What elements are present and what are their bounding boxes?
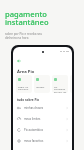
staticText: pagamento instantâneo [5,9,49,27]
button[interactable]: meus limites [13,113,72,124]
staticText: Pix parcelado em ate 12x [54,85,67,93]
button[interactable]: meus favoritos [13,135,72,146]
button[interactable]: Pix parcelado em ate 12x [52,75,68,93]
staticText: receber [36,85,45,88]
staticText: Área Pix [17,69,35,75]
staticText: tudo sobre Pix [17,98,40,102]
staticText: meus favoritos [24,139,44,143]
button[interactable]: Pix automático [13,124,72,135]
staticText: minhas chaves [24,106,44,110]
staticText: Pix automático [24,128,44,132]
staticText: pagar ou transferir [18,85,29,91]
staticText: sobre por Pix e receba seu dinheiro na h… [5,32,43,40]
staticText: meus limites [24,117,41,121]
button[interactable]: Voltar [17,59,21,63]
button[interactable]: receber [34,75,50,93]
button[interactable]: pagar ou transferir [16,75,32,93]
button[interactable]: minhas chaves [13,102,72,113]
